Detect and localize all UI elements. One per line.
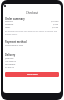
staticText: Place order — [27, 73, 38, 76]
staticText: CA 90210 — [5, 66, 14, 69]
staticText: Payment method — [5, 40, 27, 43]
staticText: Checkout — [26, 11, 39, 15]
staticText: Shipping — [5, 23, 14, 26]
staticText: Jane Doe — [5, 57, 14, 60]
staticText: By placing this order you agree to our t… — [5, 30, 59, 36]
staticText: Springfield — [5, 63, 16, 66]
staticText: Visa ending in 4242 — [5, 44, 24, 47]
staticText: $124.00 — [51, 20, 59, 23]
staticText: Delivery — [5, 53, 16, 56]
staticText: Order summary — [5, 17, 25, 20]
staticText: Taxes — [5, 26, 11, 29]
staticText: $10.20 — [52, 26, 59, 29]
staticText: Subtotal — [5, 20, 13, 23]
button[interactable]: Place order — [5, 72, 59, 77]
staticText: 123 Main St — [5, 60, 16, 63]
staticText: $4.00 — [53, 23, 59, 26]
